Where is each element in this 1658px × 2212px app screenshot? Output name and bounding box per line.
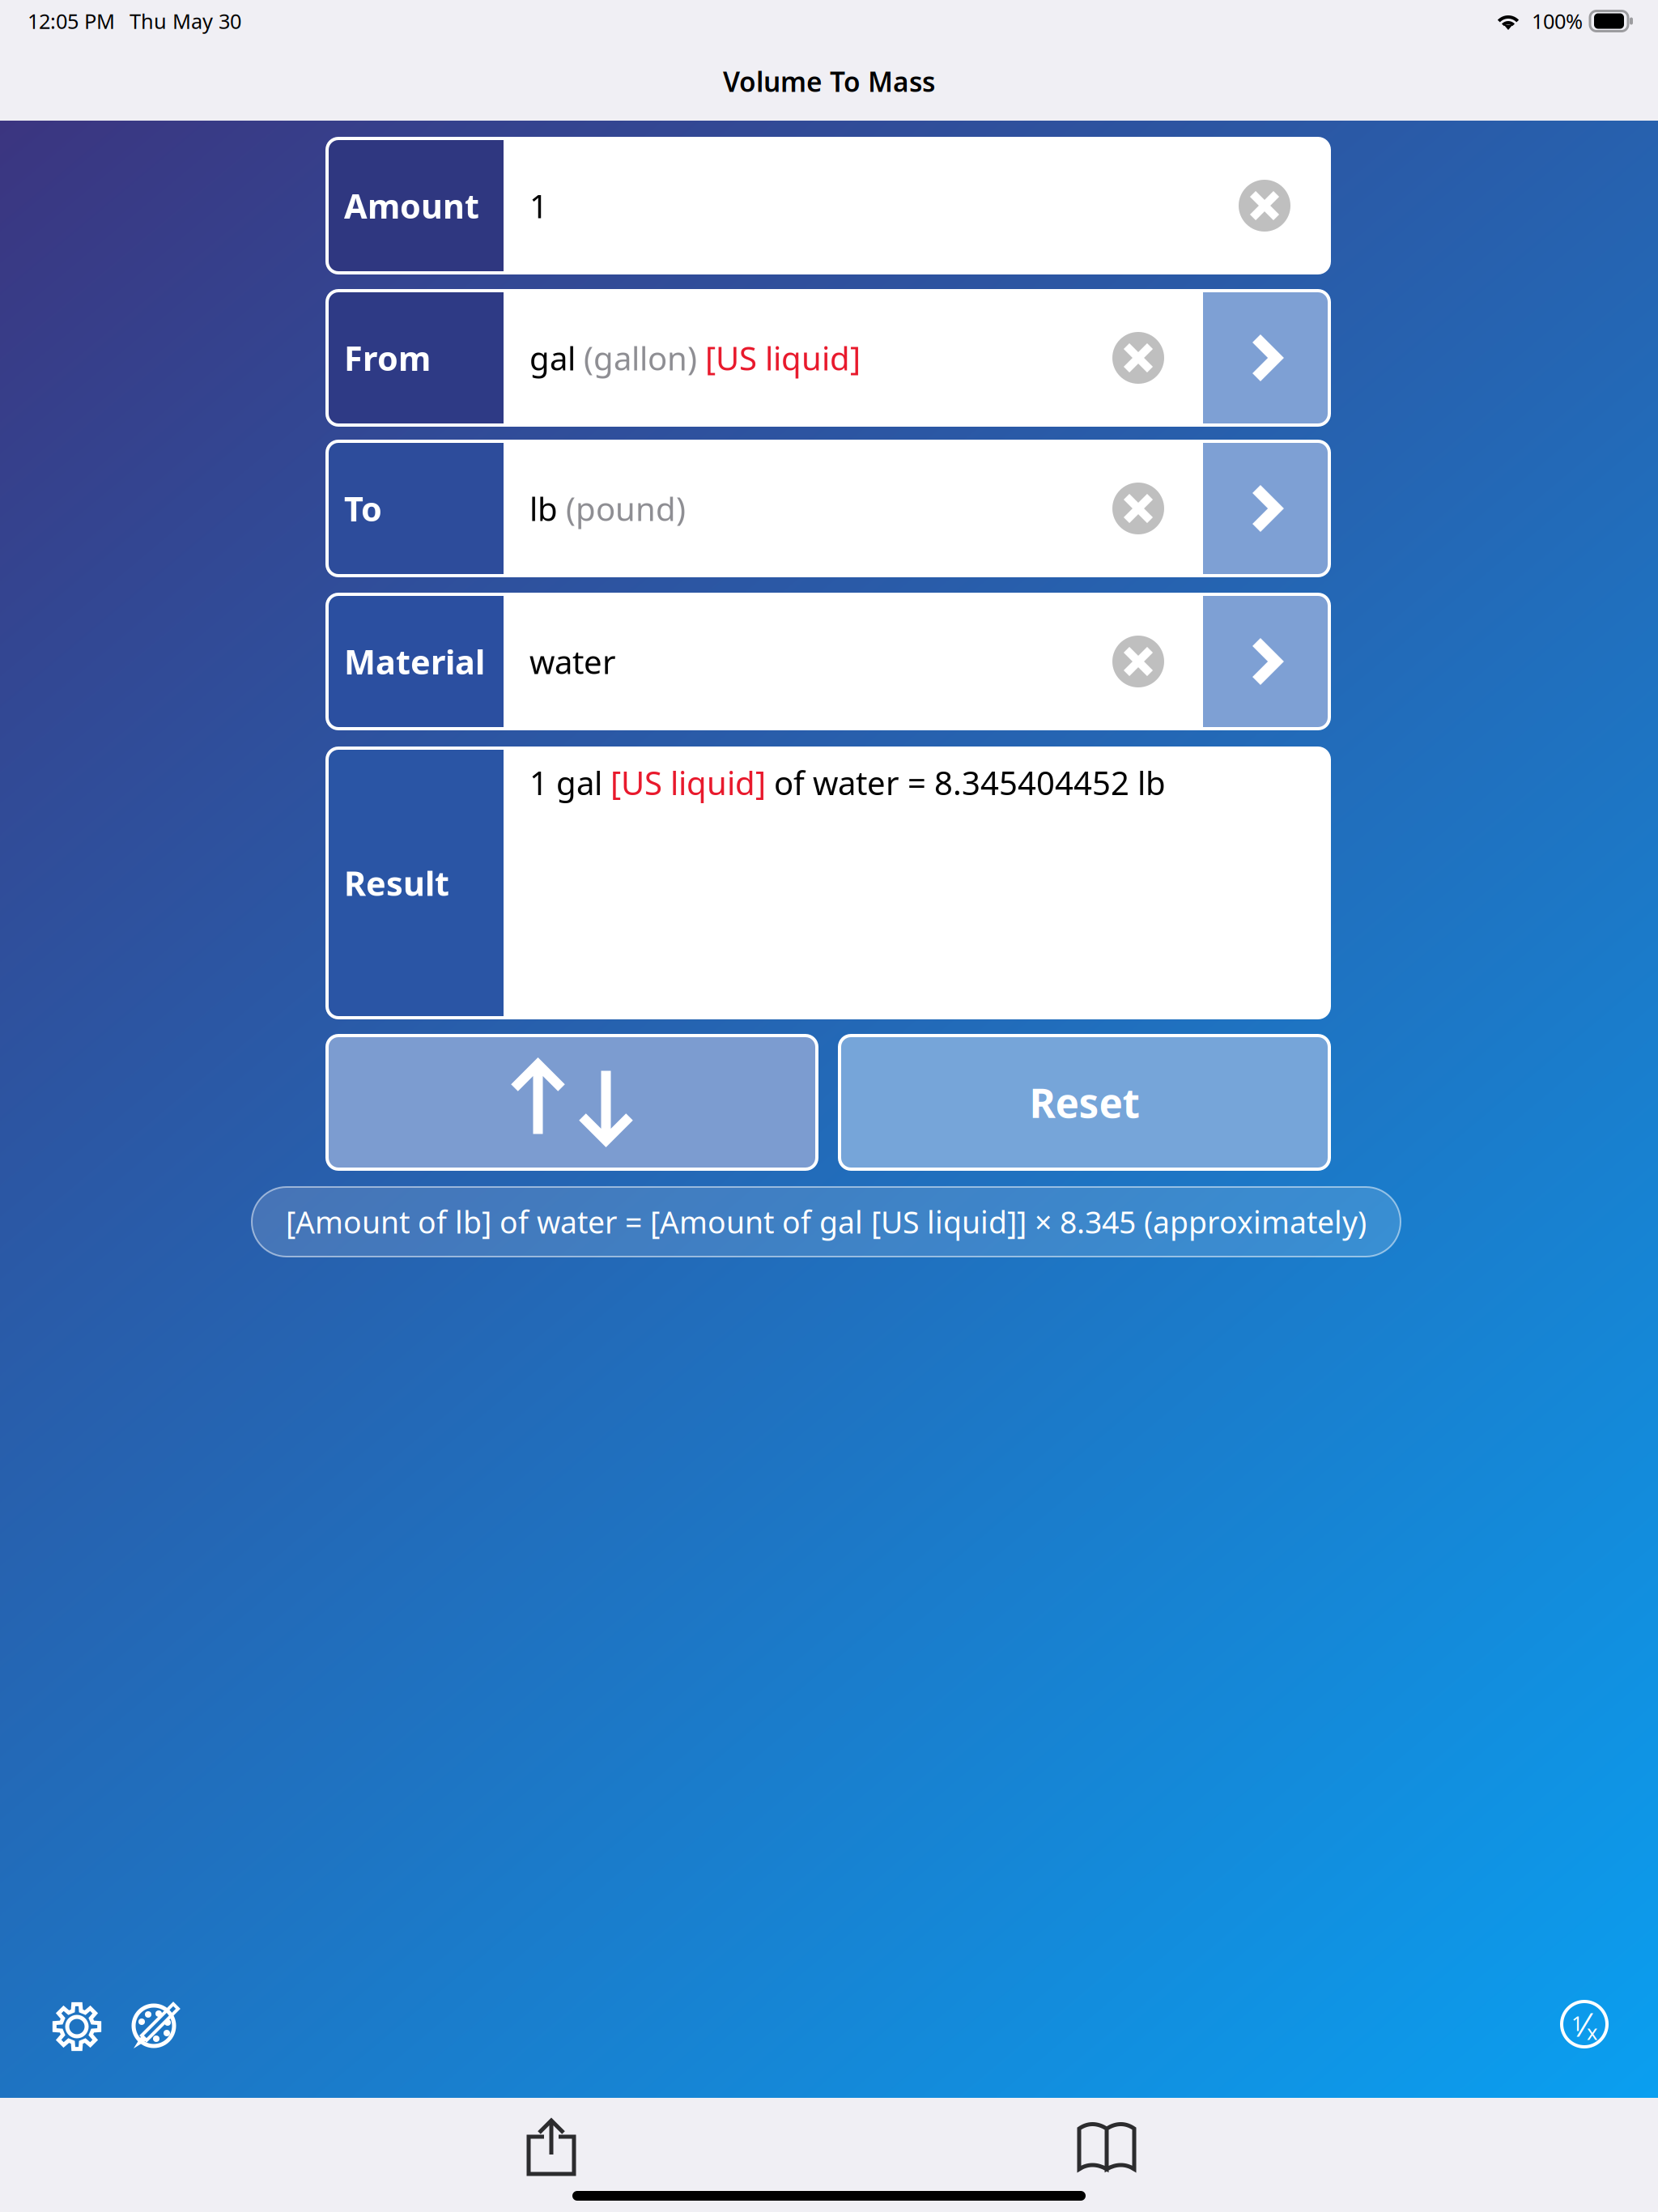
staticText: 12:05 PM: [28, 7, 115, 35]
staticText: 100%: [1532, 7, 1583, 35]
button[interactable]: Settings: [52, 2001, 102, 2052]
button[interactable]: Theme: [129, 2001, 181, 2052]
button[interactable]: Inverse: [1562, 2001, 1607, 2047]
staticText: Volume To Mass: [723, 63, 935, 99]
staticText: From: [344, 336, 431, 380]
staticText: lb: [529, 487, 566, 530]
staticText: [US liquid]: [705, 336, 861, 379]
staticText: Amount: [344, 183, 479, 228]
staticText: [US liquid]: [610, 761, 766, 804]
staticText: To: [344, 486, 382, 531]
button[interactable]: Reference: [1076, 2117, 1137, 2174]
staticText: Thu May 30: [130, 7, 241, 35]
button[interactable]: Clear Amount: [1239, 180, 1290, 232]
button[interactable]: Choose Material: [1203, 594, 1329, 729]
button[interactable]: Clear From: [1112, 332, 1164, 384]
button[interactable]: Swap units: [327, 1036, 817, 1169]
staticText: [Amount of lb] of water = [Amount of gal…: [286, 1202, 1367, 1242]
button[interactable]: Clear To: [1112, 483, 1164, 534]
staticText: Reset: [1029, 1076, 1139, 1129]
button[interactable]: Choose To: [1203, 441, 1329, 576]
staticText: water: [529, 640, 616, 683]
staticText: (gallon): [584, 336, 705, 379]
staticText: (pound): [566, 487, 686, 530]
button[interactable]: Clear Material: [1112, 636, 1164, 687]
staticText: 1 gal: [529, 761, 610, 804]
button[interactable]: Reset: [840, 1036, 1329, 1169]
staticText: 1⁄x: [1571, 2003, 1597, 2046]
button[interactable]: Choose From: [1203, 291, 1329, 425]
button[interactable]: Share: [525, 2116, 578, 2177]
staticText: gal: [529, 336, 584, 379]
staticText: Result: [344, 861, 449, 905]
staticText: 1: [529, 184, 548, 227]
staticText: Material: [344, 639, 485, 684]
staticText: of water = 8.345404452 lb: [766, 761, 1166, 804]
